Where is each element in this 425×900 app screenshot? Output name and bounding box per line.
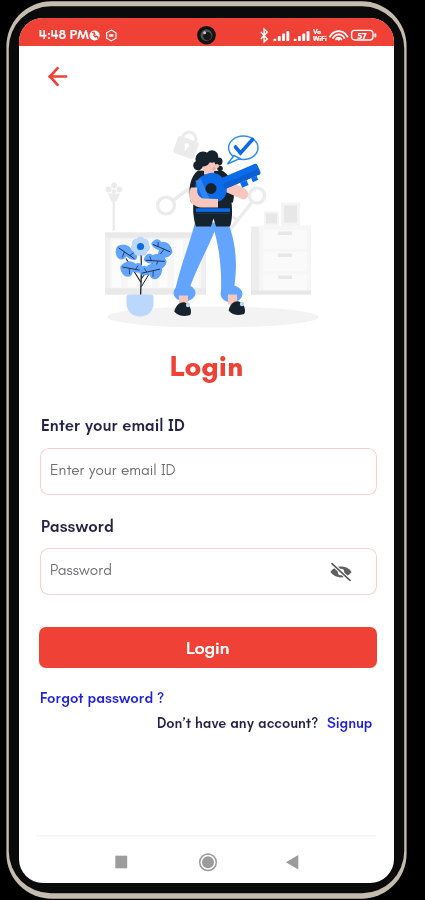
staticText: Login [186,637,230,659]
button[interactable]: Recent apps [103,844,139,880]
button[interactable]: Back [275,844,311,880]
button[interactable]: Forgot password ? [40,689,165,707]
button[interactable]: Password [40,548,377,595]
staticText: Signup [327,715,373,732]
staticText: 4:48 PM [39,26,89,42]
staticText: Don’t have any account? [157,715,319,732]
staticText: 57 [357,31,367,42]
button[interactable]: Enter your email ID [40,448,377,495]
staticText: Enter your email ID [50,460,176,479]
staticText: Password [50,560,112,579]
button[interactable]: Login [39,627,377,668]
staticText: Login [19,349,394,383]
staticText: Enter your email ID [41,416,185,436]
staticText: Password [41,517,114,537]
staticText: Forgot password ? [40,689,165,707]
staticText: Vo WiFi [313,28,327,43]
button[interactable]: Back [27,58,71,96]
button[interactable]: Signup [319,715,373,732]
button[interactable]: Show password [329,560,353,584]
button[interactable]: Home [190,844,226,880]
